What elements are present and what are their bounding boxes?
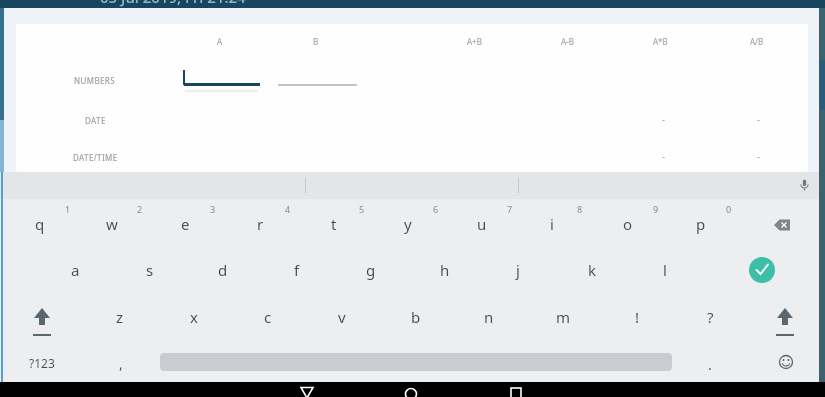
staticText: y: [404, 214, 412, 234]
staticText: r: [257, 214, 264, 234]
staticText: 5: [359, 203, 365, 215]
staticText: B: [313, 36, 319, 47]
button[interactable]: a: [42, 249, 108, 291]
staticText: n: [484, 307, 494, 327]
button[interactable]: v: [309, 296, 375, 338]
staticText: ?123: [29, 355, 55, 371]
button[interactable]: [761, 205, 803, 245]
staticText: !: [635, 307, 640, 327]
button[interactable]: g: [338, 249, 404, 291]
staticText: ,: [119, 354, 123, 373]
staticText: e: [181, 214, 190, 234]
staticText: k: [588, 260, 597, 280]
button[interactable]: [797, 178, 813, 194]
button[interactable]: !: [604, 296, 670, 338]
staticText: q: [35, 214, 45, 234]
button[interactable]: x: [161, 296, 227, 338]
staticText: c: [264, 307, 272, 327]
button[interactable]: e: [152, 203, 218, 245]
button[interactable]: w: [79, 203, 145, 245]
staticText: -: [757, 113, 760, 125]
button[interactable]: [496, 382, 536, 397]
button[interactable]: o: [595, 203, 661, 245]
button[interactable]: c: [235, 296, 301, 338]
staticText: s: [146, 260, 154, 280]
button[interactable]: ?: [677, 296, 743, 338]
staticText: 7: [507, 203, 513, 215]
staticText: p: [696, 214, 706, 234]
staticText: 4: [285, 203, 291, 215]
button[interactable]: q: [7, 203, 73, 245]
staticText: v: [338, 307, 346, 327]
button[interactable]: r: [227, 203, 293, 245]
button[interactable]: y: [375, 203, 441, 245]
button[interactable]: [770, 346, 802, 378]
button[interactable]: .: [685, 344, 735, 384]
button[interactable]: b: [383, 296, 449, 338]
staticText: g: [366, 260, 376, 280]
staticText: -: [662, 113, 665, 125]
staticText: 9: [653, 203, 659, 215]
button[interactable]: k: [559, 249, 625, 291]
staticText: a: [71, 260, 80, 280]
staticText: DATE: [85, 115, 106, 126]
staticText: w: [106, 214, 118, 234]
staticText: x: [190, 307, 198, 327]
button[interactable]: ,: [96, 343, 146, 383]
button[interactable]: d: [190, 249, 256, 291]
staticText: 0: [726, 203, 732, 215]
staticText: z: [116, 307, 124, 327]
button[interactable]: [764, 296, 806, 338]
button[interactable]: u: [449, 203, 515, 245]
button[interactable]: f: [264, 249, 330, 291]
staticText: A: [217, 36, 223, 47]
staticText: l: [663, 260, 667, 280]
staticText: -: [757, 150, 760, 162]
button[interactable]: p: [668, 203, 734, 245]
button[interactable]: [278, 70, 356, 86]
button[interactable]: s: [117, 249, 183, 291]
staticText: DATE/TIME: [73, 152, 118, 163]
staticText: A/B: [750, 36, 764, 47]
button[interactable]: t: [301, 203, 367, 245]
button[interactable]: l: [632, 249, 698, 291]
button[interactable]: [287, 382, 327, 397]
button[interactable]: n: [456, 296, 522, 338]
button[interactable]: j: [485, 249, 551, 291]
staticText: A-B: [561, 36, 574, 47]
staticText: .: [708, 355, 712, 374]
staticText: -: [662, 150, 665, 162]
staticText: t: [331, 214, 337, 234]
staticText: A+B: [467, 36, 482, 47]
staticText: NUMBERS: [74, 75, 115, 86]
button[interactable]: [735, 249, 789, 291]
staticText: 8: [577, 203, 583, 215]
staticText: 2: [137, 203, 143, 215]
staticText: ?: [707, 307, 714, 327]
button[interactable]: m: [530, 296, 596, 338]
staticText: m: [556, 307, 571, 327]
button[interactable]: h: [412, 249, 478, 291]
staticText: o: [623, 214, 633, 234]
staticText: j: [516, 260, 520, 280]
staticText: 3: [210, 203, 216, 215]
staticText: A*B: [653, 36, 668, 47]
staticText: d: [218, 260, 228, 280]
staticText: 6: [433, 203, 439, 215]
staticText: u: [477, 214, 487, 234]
staticText: b: [411, 307, 421, 327]
button[interactable]: z: [87, 296, 153, 338]
staticText: f: [294, 260, 300, 280]
staticText: i: [550, 214, 554, 234]
staticText: h: [440, 260, 450, 280]
button[interactable]: [183, 70, 260, 86]
staticText: 05 Jul 2019, Fri 21:24: [100, 0, 246, 7]
button[interactable]: ?123: [12, 343, 72, 383]
button[interactable]: [21, 296, 63, 338]
staticText: 1: [65, 203, 71, 215]
button[interactable]: i: [519, 203, 585, 245]
button[interactable]: [391, 382, 431, 397]
